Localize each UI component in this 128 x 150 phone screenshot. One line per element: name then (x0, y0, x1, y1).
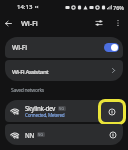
staticText: Skylink-dev (25, 104, 56, 112)
button[interactable]: Skylink-dev (5, 100, 123, 122)
staticText: Wi-Fi Assistant (12, 67, 49, 75)
staticText: Saved networks (11, 87, 44, 94)
button[interactable]: Filter (91, 15, 107, 31)
staticText: Wi-Fi (21, 18, 38, 28)
button[interactable]: More options (110, 15, 126, 31)
staticText: Connected, Metered (25, 112, 65, 118)
staticText: Wi-Fi (12, 43, 27, 52)
staticText: 14:13 (17, 3, 33, 11)
button[interactable]: Back (0, 15, 16, 31)
button[interactable]: NN (5, 124, 123, 145)
staticText: 5G (38, 132, 44, 137)
button[interactable]: Wi-Fi (5, 37, 123, 58)
staticText: 5G (59, 106, 65, 111)
staticText: NN (25, 131, 35, 139)
button[interactable]: Wi-Fi Assistant (5, 60, 123, 81)
button[interactable]: Network details (101, 102, 123, 122)
button[interactable]: Network details (104, 126, 122, 144)
staticText: 76% (113, 4, 124, 11)
